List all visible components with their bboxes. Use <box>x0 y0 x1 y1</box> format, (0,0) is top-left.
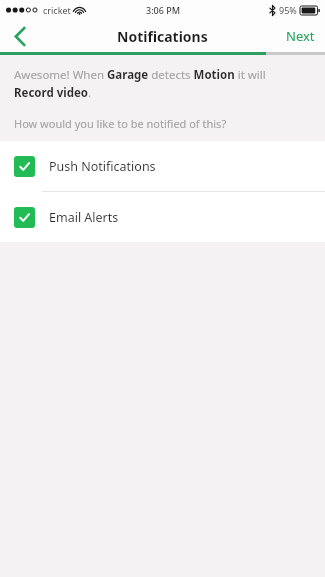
staticText: 3:06 PM <box>146 4 180 16</box>
staticText: Email Alerts <box>49 209 119 226</box>
staticText: Notifications <box>117 27 208 46</box>
staticText: cricket <box>43 4 71 16</box>
staticText: Push Notifications <box>49 158 156 175</box>
button[interactable]: Next <box>276 20 325 52</box>
staticText: Awesome! When Garage detects Motion it w… <box>14 67 301 100</box>
button[interactable]: Email Alerts <box>0 192 325 242</box>
button[interactable]: Push Notifications <box>0 141 325 191</box>
staticText: How would you like to be notified of thi… <box>14 116 227 131</box>
staticText: 95% <box>279 4 297 16</box>
staticText: Next <box>286 27 315 45</box>
button[interactable]: Back <box>0 20 40 52</box>
